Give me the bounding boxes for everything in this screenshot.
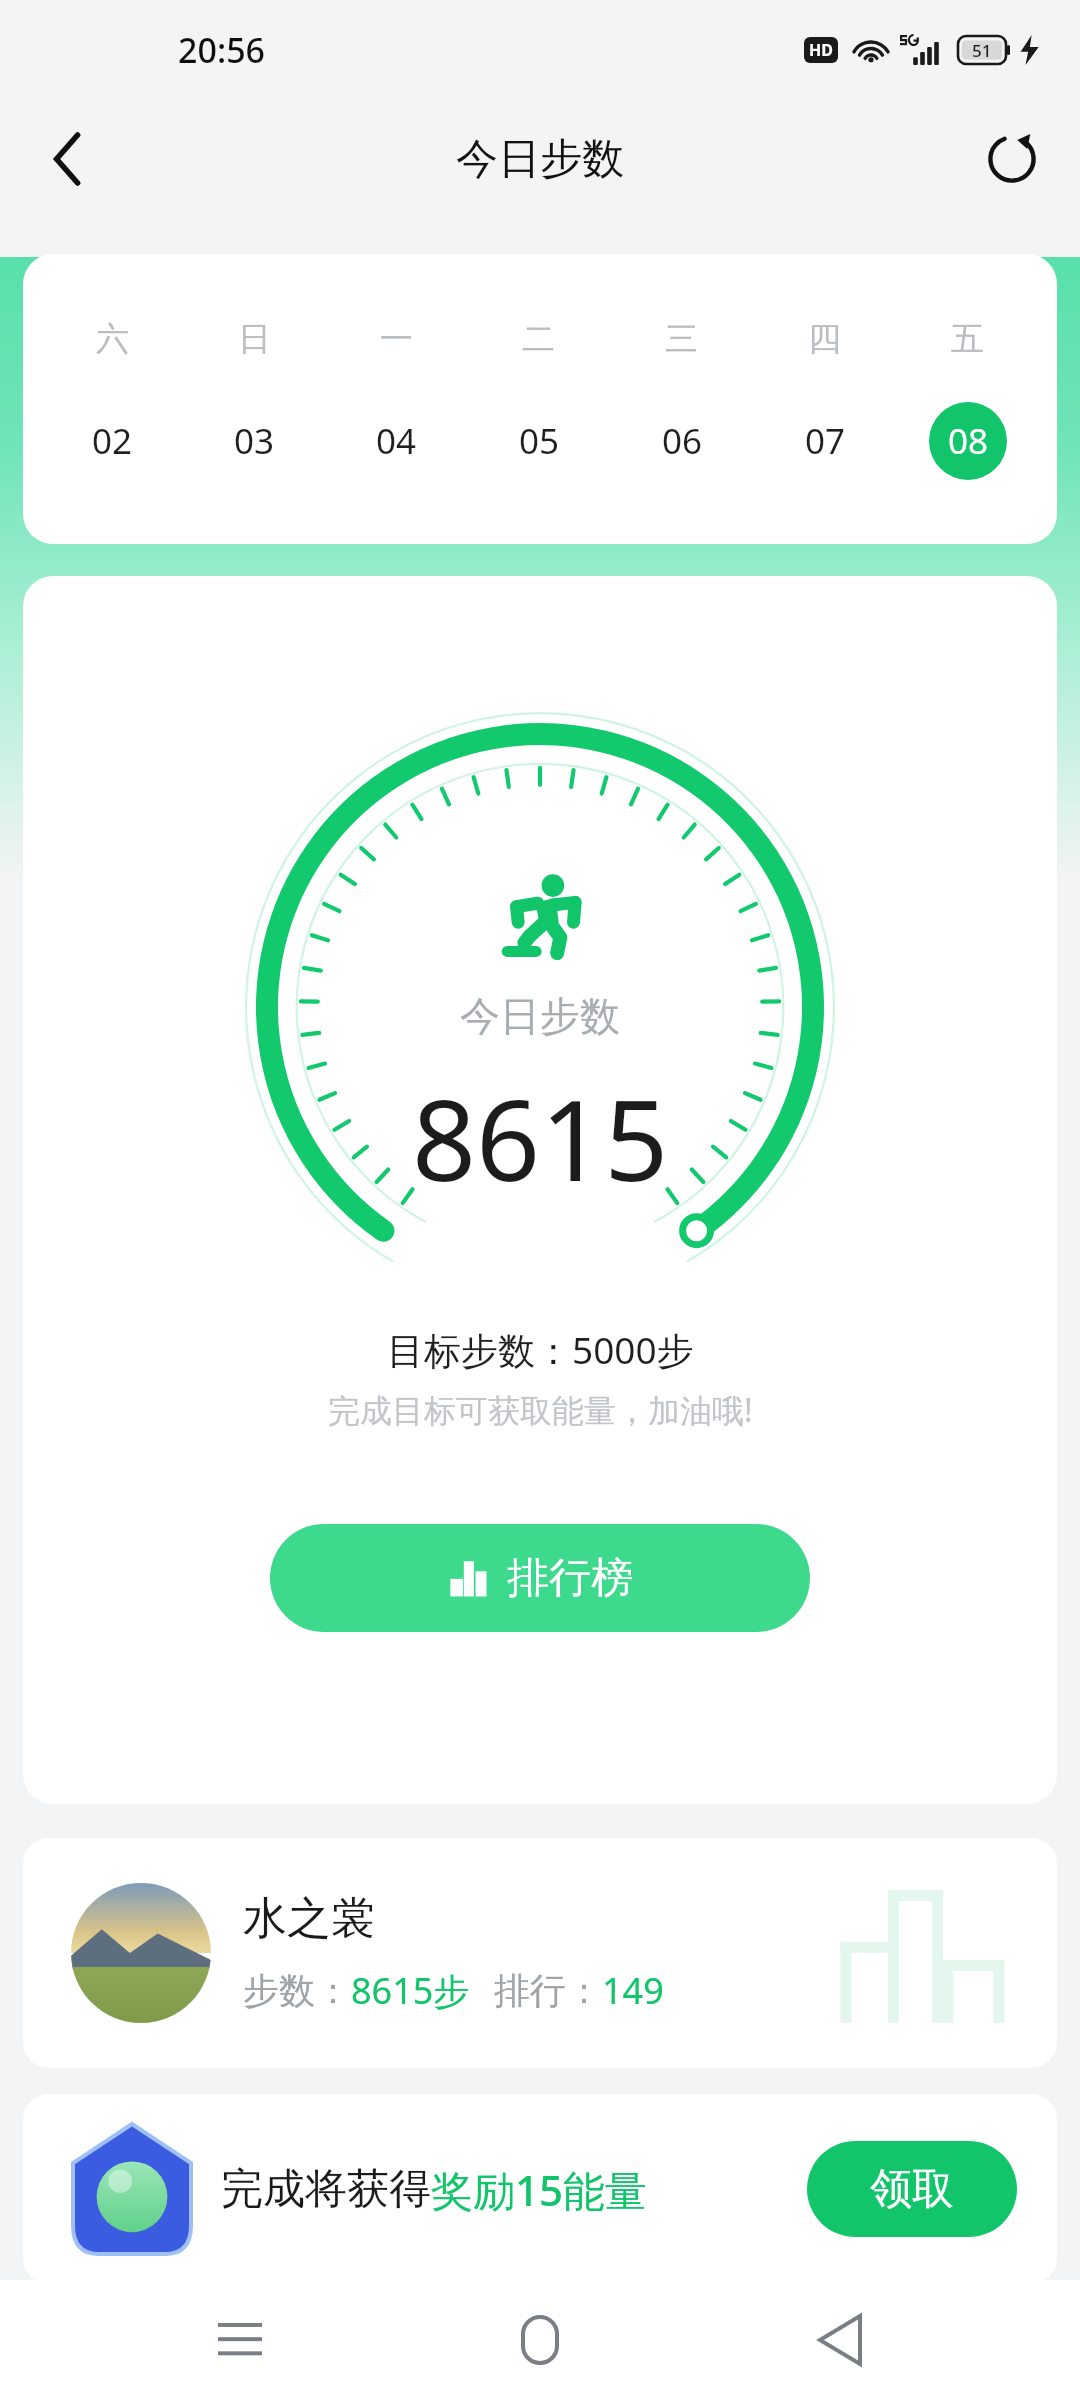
button[interactable]: 五 bbox=[896, 254, 1039, 544]
staticText: 今日步数 bbox=[456, 133, 624, 186]
staticText: 日 bbox=[238, 318, 271, 360]
button[interactable]: 三 bbox=[610, 254, 753, 544]
staticText: 08 bbox=[948, 417, 989, 465]
staticText: 三 bbox=[665, 318, 698, 360]
staticText: HD bbox=[809, 39, 833, 61]
staticText: 领取 bbox=[870, 2163, 954, 2216]
staticText: 排行： bbox=[494, 1968, 602, 2013]
staticText: 完成将获得 bbox=[221, 2163, 431, 2216]
button[interactable]: 领取 bbox=[807, 2141, 1017, 2237]
staticText: 51 bbox=[972, 39, 992, 62]
staticText: 8615步 bbox=[351, 1966, 470, 2015]
button[interactable]: Home bbox=[480, 2280, 600, 2400]
button[interactable]: 排行榜 bbox=[270, 1524, 810, 1632]
button[interactable]: Recent apps bbox=[180, 2280, 300, 2400]
button[interactable]: 日 bbox=[183, 254, 325, 544]
staticText: 05 bbox=[519, 417, 560, 465]
staticText: 04 bbox=[376, 417, 417, 465]
staticText: 排行榜 bbox=[507, 1552, 633, 1605]
staticText: 四 bbox=[808, 318, 841, 360]
button[interactable]: 四 bbox=[753, 254, 896, 544]
staticText: 06 bbox=[662, 417, 703, 465]
staticText: 今日步数 bbox=[460, 991, 620, 1041]
staticText: 8615 bbox=[412, 1061, 669, 1214]
button[interactable]: Back bbox=[26, 117, 110, 201]
button[interactable]: Refresh bbox=[970, 117, 1054, 201]
button[interactable]: 二 bbox=[467, 254, 610, 544]
staticText: 步数： bbox=[243, 1968, 351, 2013]
button[interactable]: Back bbox=[780, 2280, 900, 2400]
staticText: 水之裳 bbox=[243, 1891, 375, 1946]
button[interactable]: 六 bbox=[41, 254, 183, 544]
staticText: 07 bbox=[805, 417, 846, 465]
staticText: 149 bbox=[602, 1966, 664, 2015]
staticText: 六 bbox=[96, 318, 129, 360]
button[interactable]: 水之裳 bbox=[23, 1838, 1057, 2068]
staticText: 二 bbox=[522, 318, 555, 360]
staticText: 20:56 bbox=[178, 27, 266, 73]
staticText: 奖励15能量 bbox=[431, 2161, 648, 2218]
staticText: 完成目标可获取能量，加油哦! bbox=[328, 1388, 753, 1432]
staticText: 03 bbox=[234, 417, 275, 465]
staticText: 目标步数：5000步 bbox=[387, 1324, 694, 1375]
button[interactable]: 一 bbox=[325, 254, 467, 544]
staticText: 一 bbox=[380, 318, 413, 360]
staticText: 五 bbox=[951, 318, 984, 360]
staticText: 02 bbox=[92, 417, 133, 465]
